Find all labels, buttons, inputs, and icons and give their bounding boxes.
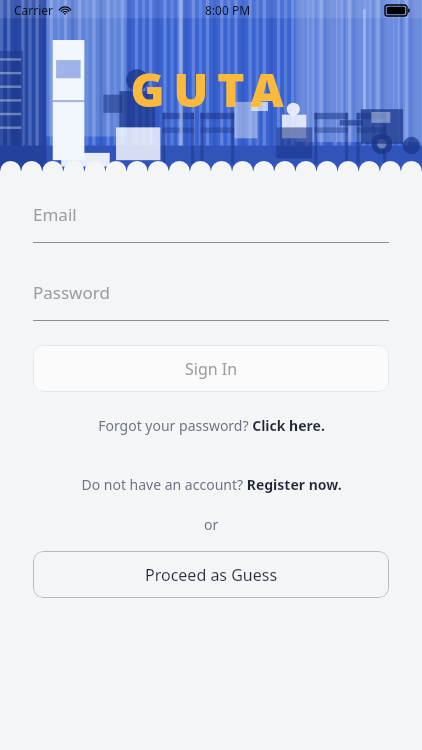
staticText: GUTA xyxy=(130,58,293,121)
staticText: Password xyxy=(33,281,110,304)
button[interactable]: Proceed as Guess xyxy=(33,551,389,598)
staticText: Forgot your password? Click here. xyxy=(98,416,325,435)
button[interactable]: Password xyxy=(33,281,389,321)
other: Wi-Fi xyxy=(59,4,71,16)
button[interactable]: Forgot your password? Click here. xyxy=(0,415,422,435)
staticText: or xyxy=(204,515,219,534)
staticText: Proceed as Guess xyxy=(145,564,278,586)
button[interactable]: Sign In xyxy=(33,345,389,392)
button[interactable]: Email xyxy=(33,203,389,243)
staticText: Sign In xyxy=(185,358,238,380)
staticText: Carrier xyxy=(14,2,54,18)
other: Battery xyxy=(385,5,410,16)
staticText: Do not have an account? Register now. xyxy=(81,475,342,494)
button[interactable]: Do not have an account? Register now. xyxy=(0,474,422,494)
staticText: Email xyxy=(33,203,77,226)
staticText: 8:00 PM xyxy=(205,2,251,18)
